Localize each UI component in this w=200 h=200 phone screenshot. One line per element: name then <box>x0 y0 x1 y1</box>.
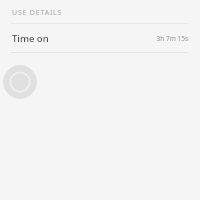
button[interactable]: Time on <box>0 24 200 52</box>
button[interactable]: App icon <box>3 65 37 99</box>
staticText: USE DETAILS <box>12 8 63 18</box>
staticText: Time on <box>12 32 49 45</box>
staticText: 3h 7m 15s <box>156 34 188 43</box>
